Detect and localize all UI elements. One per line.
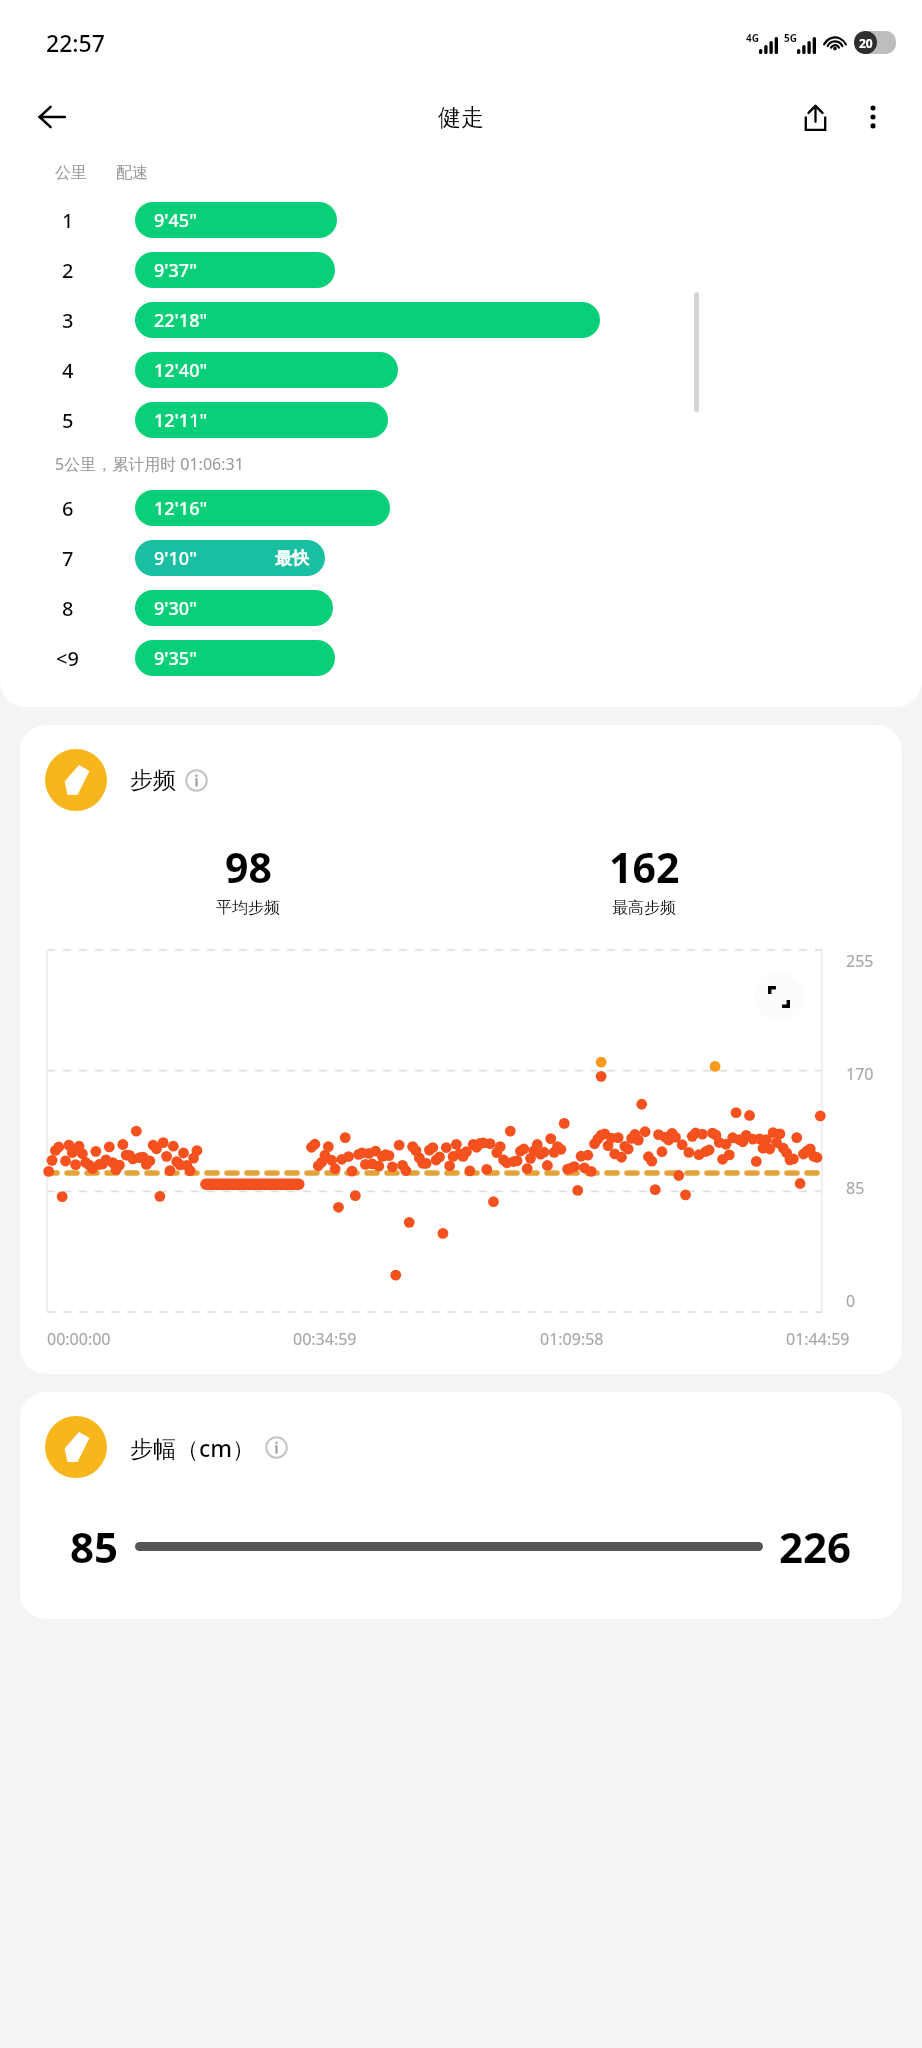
staticText: 4G bbox=[746, 31, 759, 45]
staticText: 4 bbox=[62, 357, 74, 384]
staticText: 9'35" bbox=[154, 646, 197, 671]
button[interactable]: Back bbox=[26, 91, 78, 143]
staticText: 20 bbox=[859, 35, 873, 51]
staticText: 1 bbox=[62, 207, 74, 234]
button[interactable]: 步频 bbox=[20, 725, 902, 1374]
staticText: 步幅（cm） bbox=[130, 1432, 256, 1463]
button[interactable]: 公里 bbox=[0, 149, 922, 707]
staticText: 5公里，累计用时 01:06:31 bbox=[55, 453, 244, 475]
staticText: 健走 bbox=[438, 103, 484, 132]
button[interactable]: Share bbox=[786, 88, 844, 146]
button[interactable]: More options bbox=[844, 88, 902, 146]
staticText: 22:57 bbox=[46, 27, 105, 58]
staticText: 01:09:58 bbox=[540, 1328, 604, 1350]
staticText: 9'10" bbox=[154, 546, 197, 571]
staticText: 最高步频 bbox=[612, 898, 676, 918]
staticText: 公里 bbox=[55, 163, 87, 183]
staticText: 12'40" bbox=[154, 358, 208, 383]
staticText: 00:34:59 bbox=[293, 1328, 357, 1350]
button[interactable]: 步幅（cm） bbox=[20, 1392, 902, 1619]
staticText: 9'37" bbox=[154, 258, 197, 283]
staticText: 22'18" bbox=[154, 308, 208, 333]
staticText: 0 bbox=[846, 1290, 856, 1312]
staticText: 3 bbox=[62, 307, 74, 334]
staticText: 9'45" bbox=[154, 208, 197, 233]
staticText: 226 bbox=[779, 1518, 852, 1575]
staticText: 255 bbox=[846, 950, 874, 972]
staticText: 01:44:59 bbox=[786, 1328, 850, 1350]
staticText: 配速 bbox=[116, 163, 148, 183]
staticText: 85 bbox=[846, 1177, 865, 1199]
staticText: 最快 bbox=[275, 548, 309, 569]
staticText: 5 bbox=[62, 407, 74, 434]
staticText: 85 bbox=[70, 1518, 119, 1575]
staticText: 7 bbox=[62, 545, 74, 572]
staticText: 12'16" bbox=[154, 496, 208, 521]
staticText: 162 bbox=[609, 839, 680, 895]
staticText: 5G bbox=[784, 31, 797, 45]
staticText: 98 bbox=[225, 839, 272, 895]
staticText: 步频 bbox=[130, 766, 176, 795]
staticText: <9 bbox=[56, 645, 79, 672]
staticText: 170 bbox=[846, 1063, 874, 1085]
staticText: 8 bbox=[62, 595, 74, 622]
button[interactable]: Expand chart bbox=[754, 972, 804, 1022]
staticText: 6 bbox=[62, 495, 74, 522]
staticText: 平均步频 bbox=[216, 898, 280, 918]
staticText: 2 bbox=[62, 257, 74, 284]
staticText: 9'30" bbox=[154, 596, 197, 621]
staticText: 12'11" bbox=[154, 408, 208, 433]
staticText: 00:00:00 bbox=[47, 1328, 111, 1350]
